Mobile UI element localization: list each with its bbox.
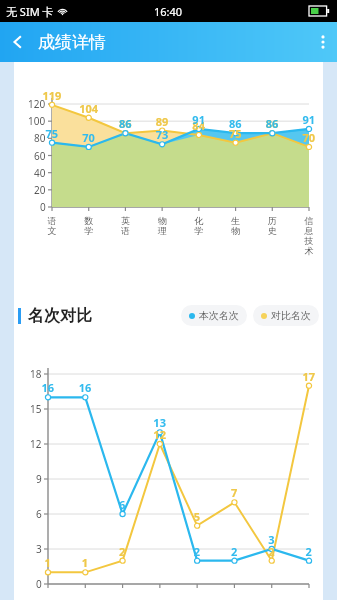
staticText: 对比名次 bbox=[271, 309, 311, 322]
staticText: 无 SIM 卡 bbox=[6, 4, 54, 19]
staticText: 成绩详情 bbox=[38, 32, 106, 53]
staticText: 名次对比 bbox=[28, 306, 92, 326]
staticText: 本次名次 bbox=[199, 309, 239, 322]
button[interactable]: Back bbox=[0, 28, 32, 56]
button[interactable]: More options bbox=[309, 26, 337, 58]
button[interactable]: 本次名次 bbox=[181, 305, 247, 326]
button[interactable]: 对比名次 bbox=[253, 305, 319, 326]
staticText: 16:40 bbox=[154, 4, 183, 19]
